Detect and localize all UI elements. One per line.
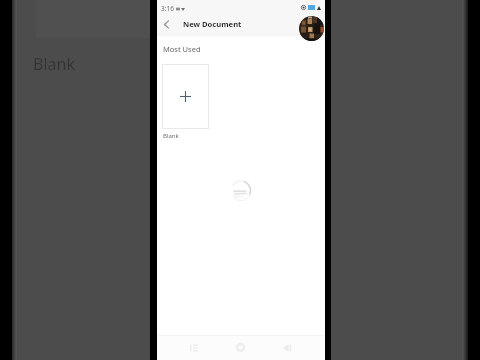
staticText: Most Used	[163, 44, 201, 54]
staticText: Blank	[163, 132, 179, 140]
button[interactable]: Back	[280, 341, 293, 354]
button[interactable]: Recents	[187, 341, 200, 354]
button[interactable]: Back	[158, 16, 174, 32]
staticText: 3:16	[161, 4, 174, 13]
button[interactable]	[162, 64, 209, 129]
staticText: New Document	[183, 19, 242, 29]
button[interactable]: Account	[299, 16, 324, 41]
button[interactable]: Home	[234, 341, 247, 354]
staticText: Blank	[33, 53, 75, 75]
